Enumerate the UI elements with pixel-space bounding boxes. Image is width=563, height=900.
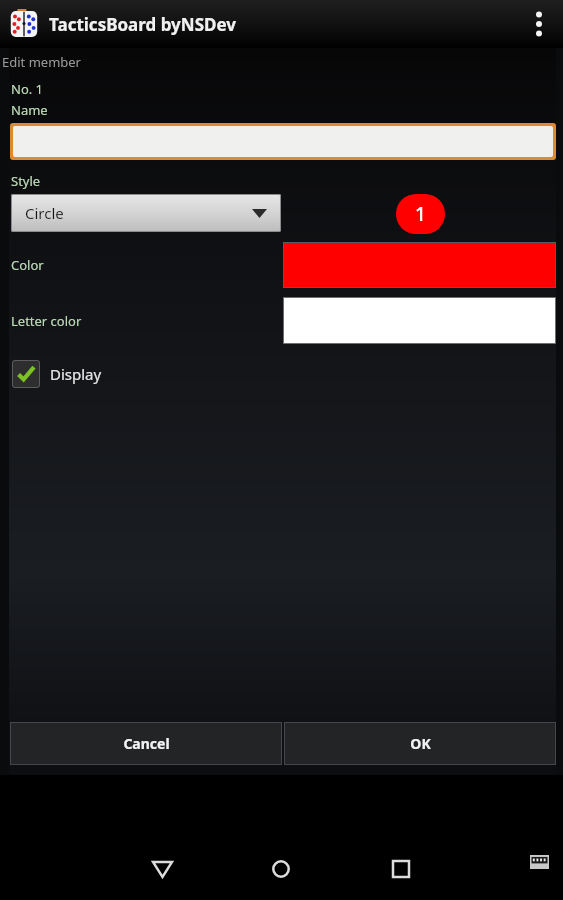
staticText: Color <box>11 256 44 274</box>
button[interactable]: More options <box>515 0 563 48</box>
staticText: Edit member <box>2 53 81 71</box>
staticText: Style <box>11 172 41 190</box>
staticText: Cancel <box>123 734 170 753</box>
staticText: Name <box>11 101 48 119</box>
button[interactable]: Switch keyboard <box>515 838 563 886</box>
button[interactable]: Home <box>250 838 312 900</box>
button[interactable]: OK <box>284 722 556 765</box>
button[interactable]: Member 1 preview <box>396 194 445 234</box>
staticText: Display <box>50 364 102 384</box>
staticText: Letter color <box>11 312 82 330</box>
staticText: No. 1 <box>11 80 44 98</box>
staticText: OK <box>410 734 431 753</box>
button[interactable]: Circle <box>11 194 281 232</box>
button[interactable]: Display <box>12 357 102 391</box>
button[interactable]: Recent apps <box>370 838 432 900</box>
button[interactable]: Choose letter color <box>283 297 556 344</box>
staticText: 1 <box>415 201 426 227</box>
button[interactable]: Choose color <box>283 242 556 288</box>
button[interactable]: Back <box>131 838 193 900</box>
staticText: TacticsBoard byNSDev <box>49 13 236 36</box>
staticText: Circle <box>25 203 64 223</box>
button[interactable]: Cancel <box>10 722 282 765</box>
